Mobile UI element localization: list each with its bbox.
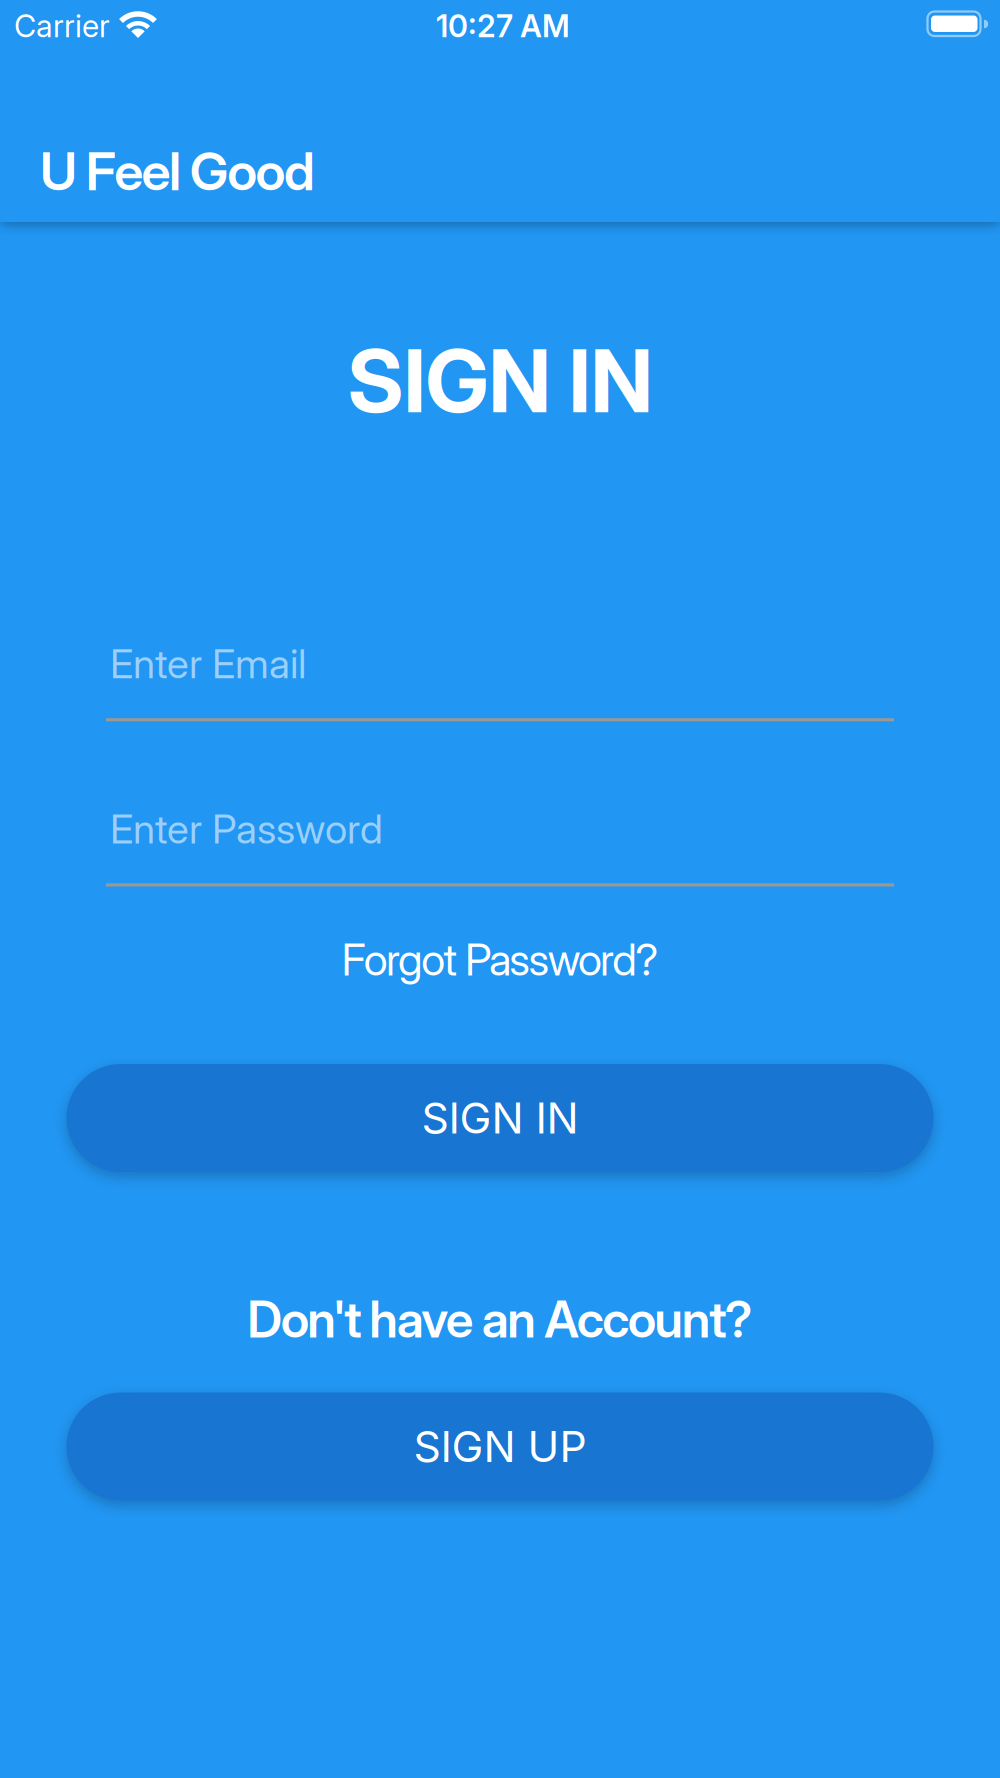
staticText: Enter Password (110, 805, 383, 852)
staticText: Carrier (14, 8, 110, 44)
staticText: Forgot Password? (341, 933, 658, 986)
staticText: 10:27 AM (436, 8, 570, 44)
staticText: Enter Email (110, 640, 306, 687)
button[interactable]: Enter Password (106, 805, 894, 886)
button[interactable]: Enter Email (106, 640, 894, 721)
staticText: SIGN IN (421, 1093, 578, 1143)
button[interactable]: SIGN IN (66, 1064, 933, 1172)
button[interactable]: SIGN UP (66, 1392, 933, 1500)
staticText: Don't have an Account? (247, 1289, 753, 1349)
staticText: U Feel Good (40, 139, 315, 203)
staticText: SIGN UP (413, 1421, 586, 1472)
button[interactable]: Forgot Password? (341, 933, 658, 986)
staticText: SIGN IN (347, 329, 652, 433)
